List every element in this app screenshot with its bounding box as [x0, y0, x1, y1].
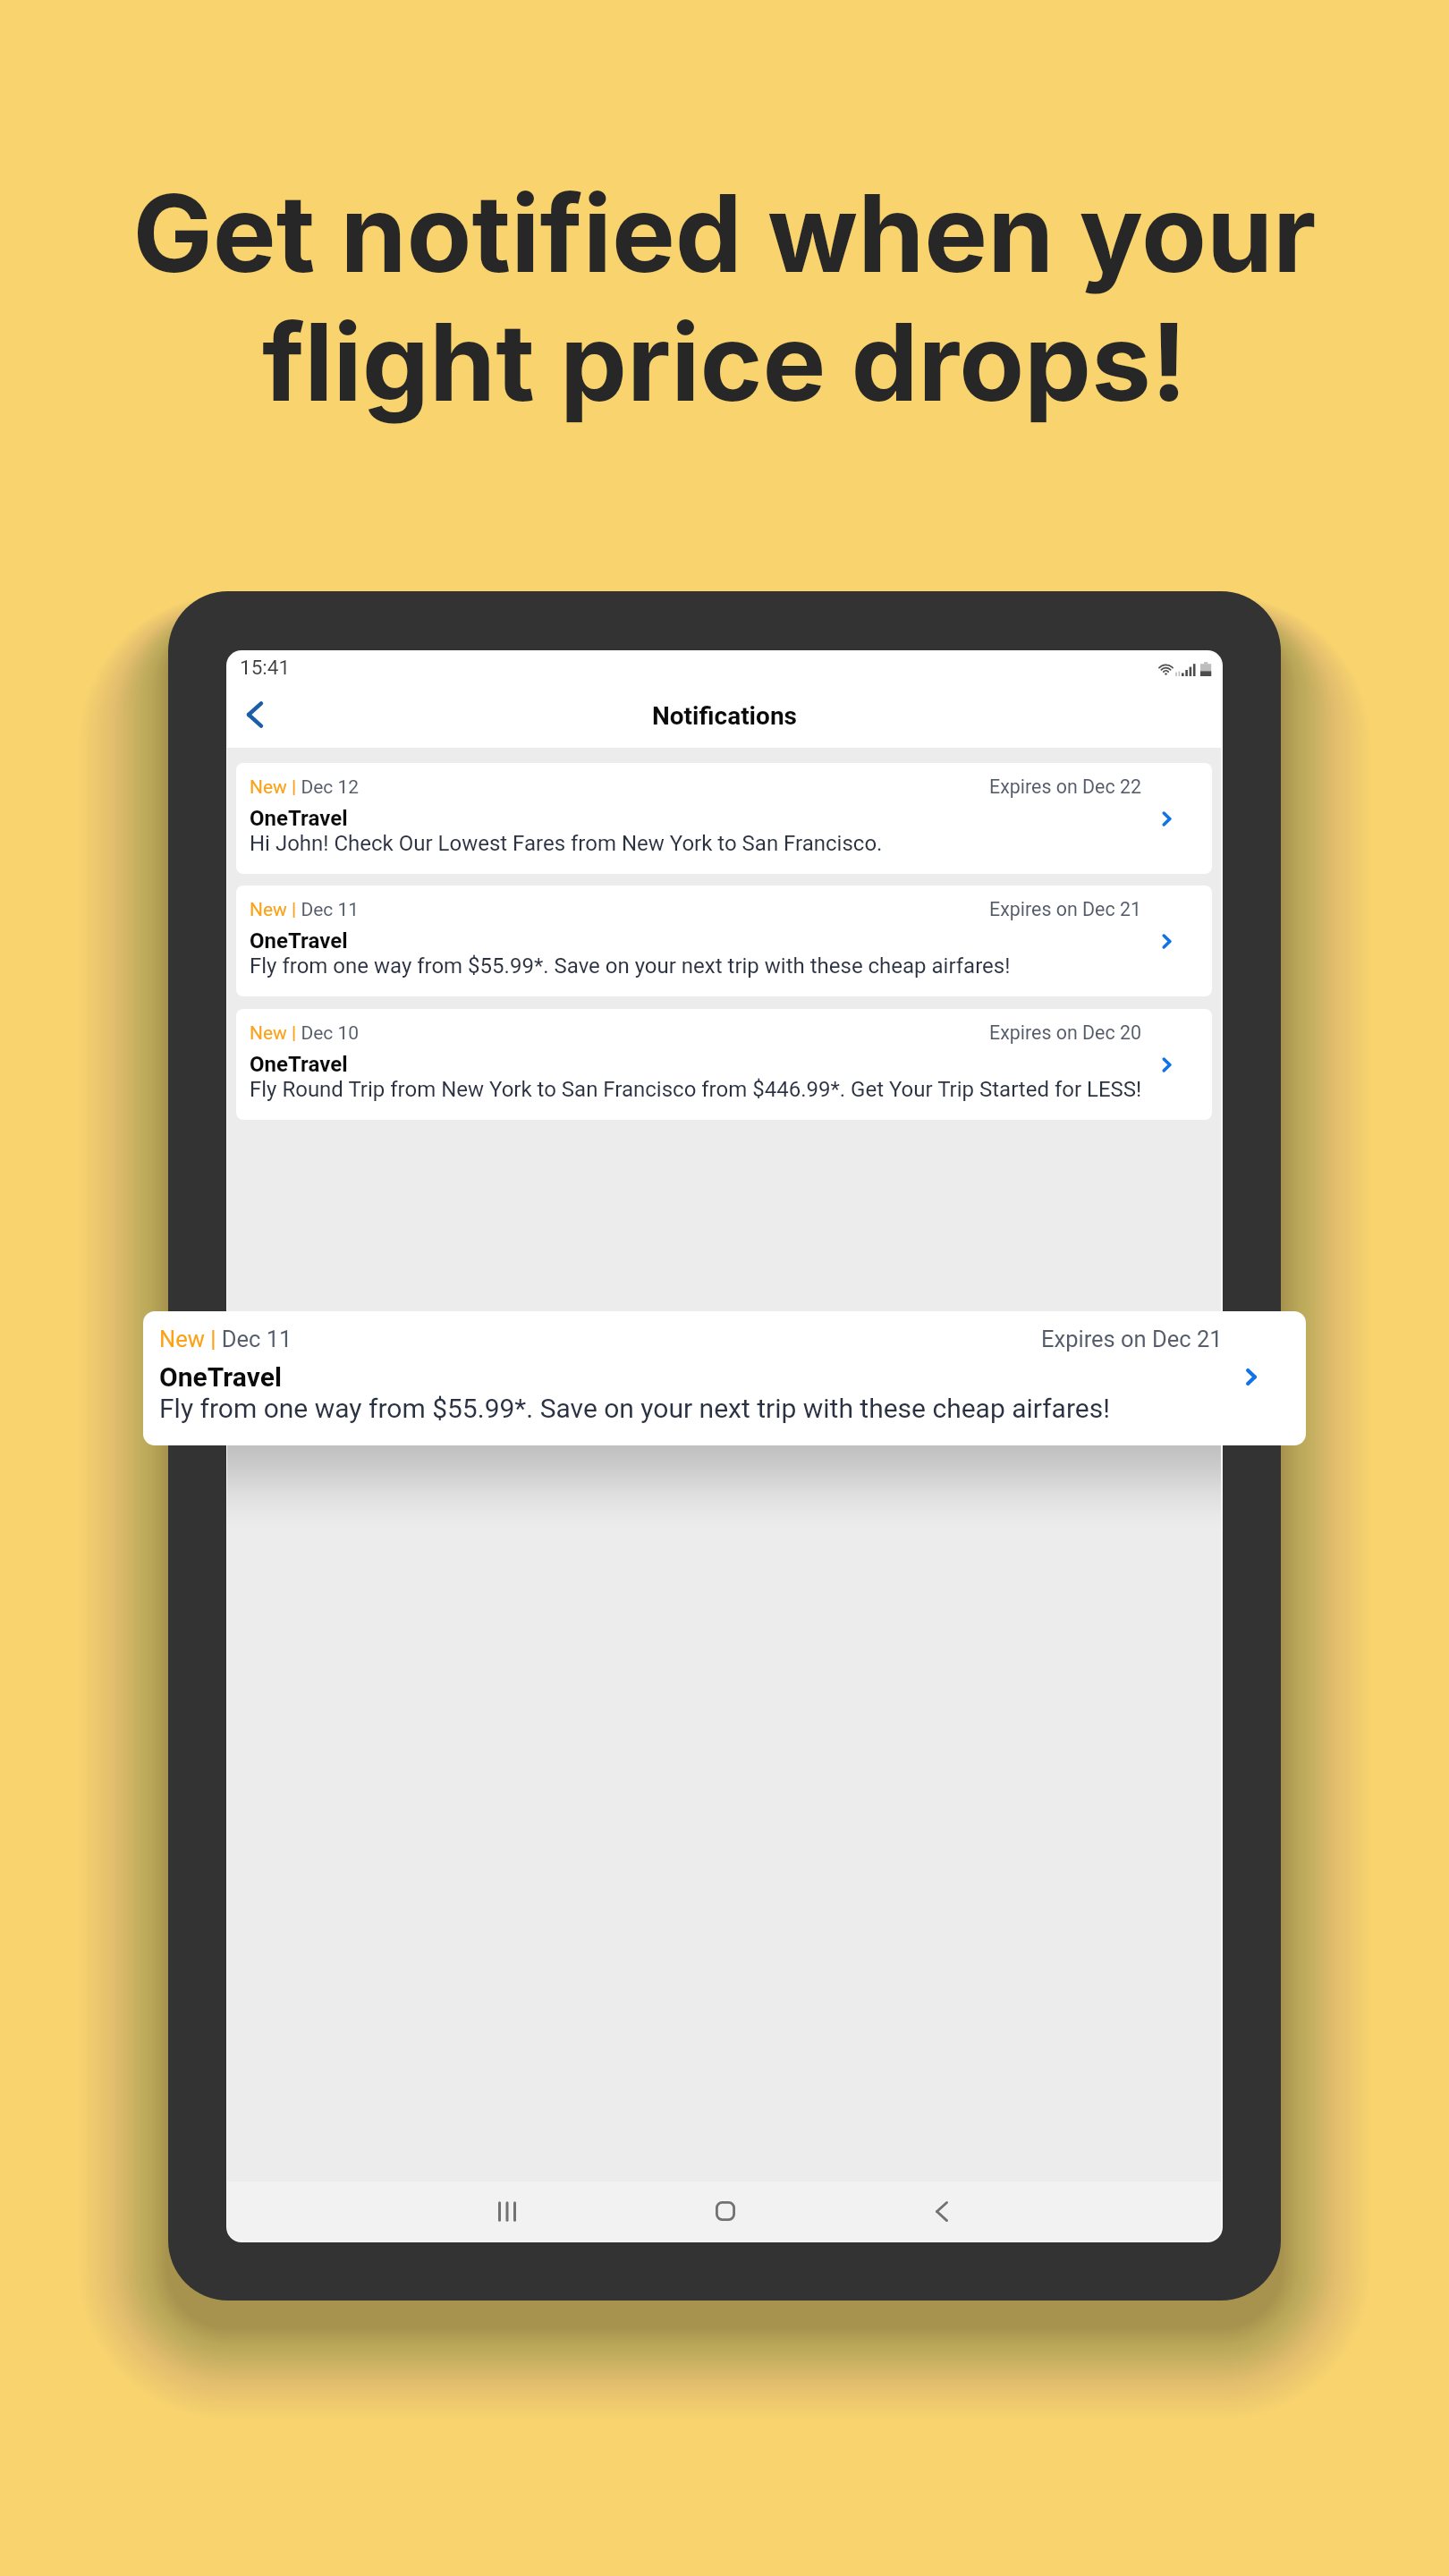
button[interactable]: Recent apps	[478, 2182, 537, 2241]
button[interactable]: Open notification	[1157, 928, 1177, 954]
button[interactable]: Home	[696, 2182, 755, 2241]
button[interactable]: New | Dec 11	[236, 885, 1212, 996]
staticText: Expires on Dec 20	[989, 1021, 1141, 1044]
staticText: Notifications	[652, 701, 797, 731]
staticText: Expires on Dec 22	[989, 775, 1141, 798]
staticText: New | Dec 11	[250, 899, 360, 921]
staticText: 15:41	[240, 656, 291, 679]
staticText: Fly Round Trip from New York to San Fran…	[250, 1077, 1142, 1102]
staticText: OneTravel	[250, 928, 348, 953]
button[interactable]: Open notification	[1241, 1363, 1262, 1391]
button[interactable]: Open notification	[1157, 806, 1177, 832]
staticText: Expires on Dec 21	[1041, 1326, 1223, 1352]
staticText: New | Dec 11	[159, 1326, 292, 1352]
staticText: New | Dec 12	[250, 776, 360, 799]
staticText: OneTravel	[250, 1052, 348, 1077]
staticText: Fly from one way from $55.99*. Save on y…	[250, 953, 1011, 979]
staticText: OneTravel	[250, 806, 348, 831]
staticText: Expires on Dec 21	[989, 898, 1141, 920]
button[interactable]: New | Dec 10	[236, 1009, 1212, 1120]
button[interactable]: New | Dec 12	[236, 763, 1212, 874]
button[interactable]: Open notification	[1157, 1052, 1177, 1078]
staticText: Get notified when your flight price drop…	[0, 169, 1449, 427]
staticText: OneTravel	[159, 1361, 282, 1393]
staticText: Hi John! Check Our Lowest Fares from New…	[250, 831, 883, 856]
button[interactable]: New | Dec 11	[143, 1311, 1306, 1445]
button[interactable]: Back	[912, 2182, 971, 2241]
staticText: Fly from one way from $55.99*. Save on y…	[159, 1393, 1110, 1424]
staticText: New | Dec 10	[250, 1022, 360, 1045]
button[interactable]: Back	[230, 690, 280, 740]
